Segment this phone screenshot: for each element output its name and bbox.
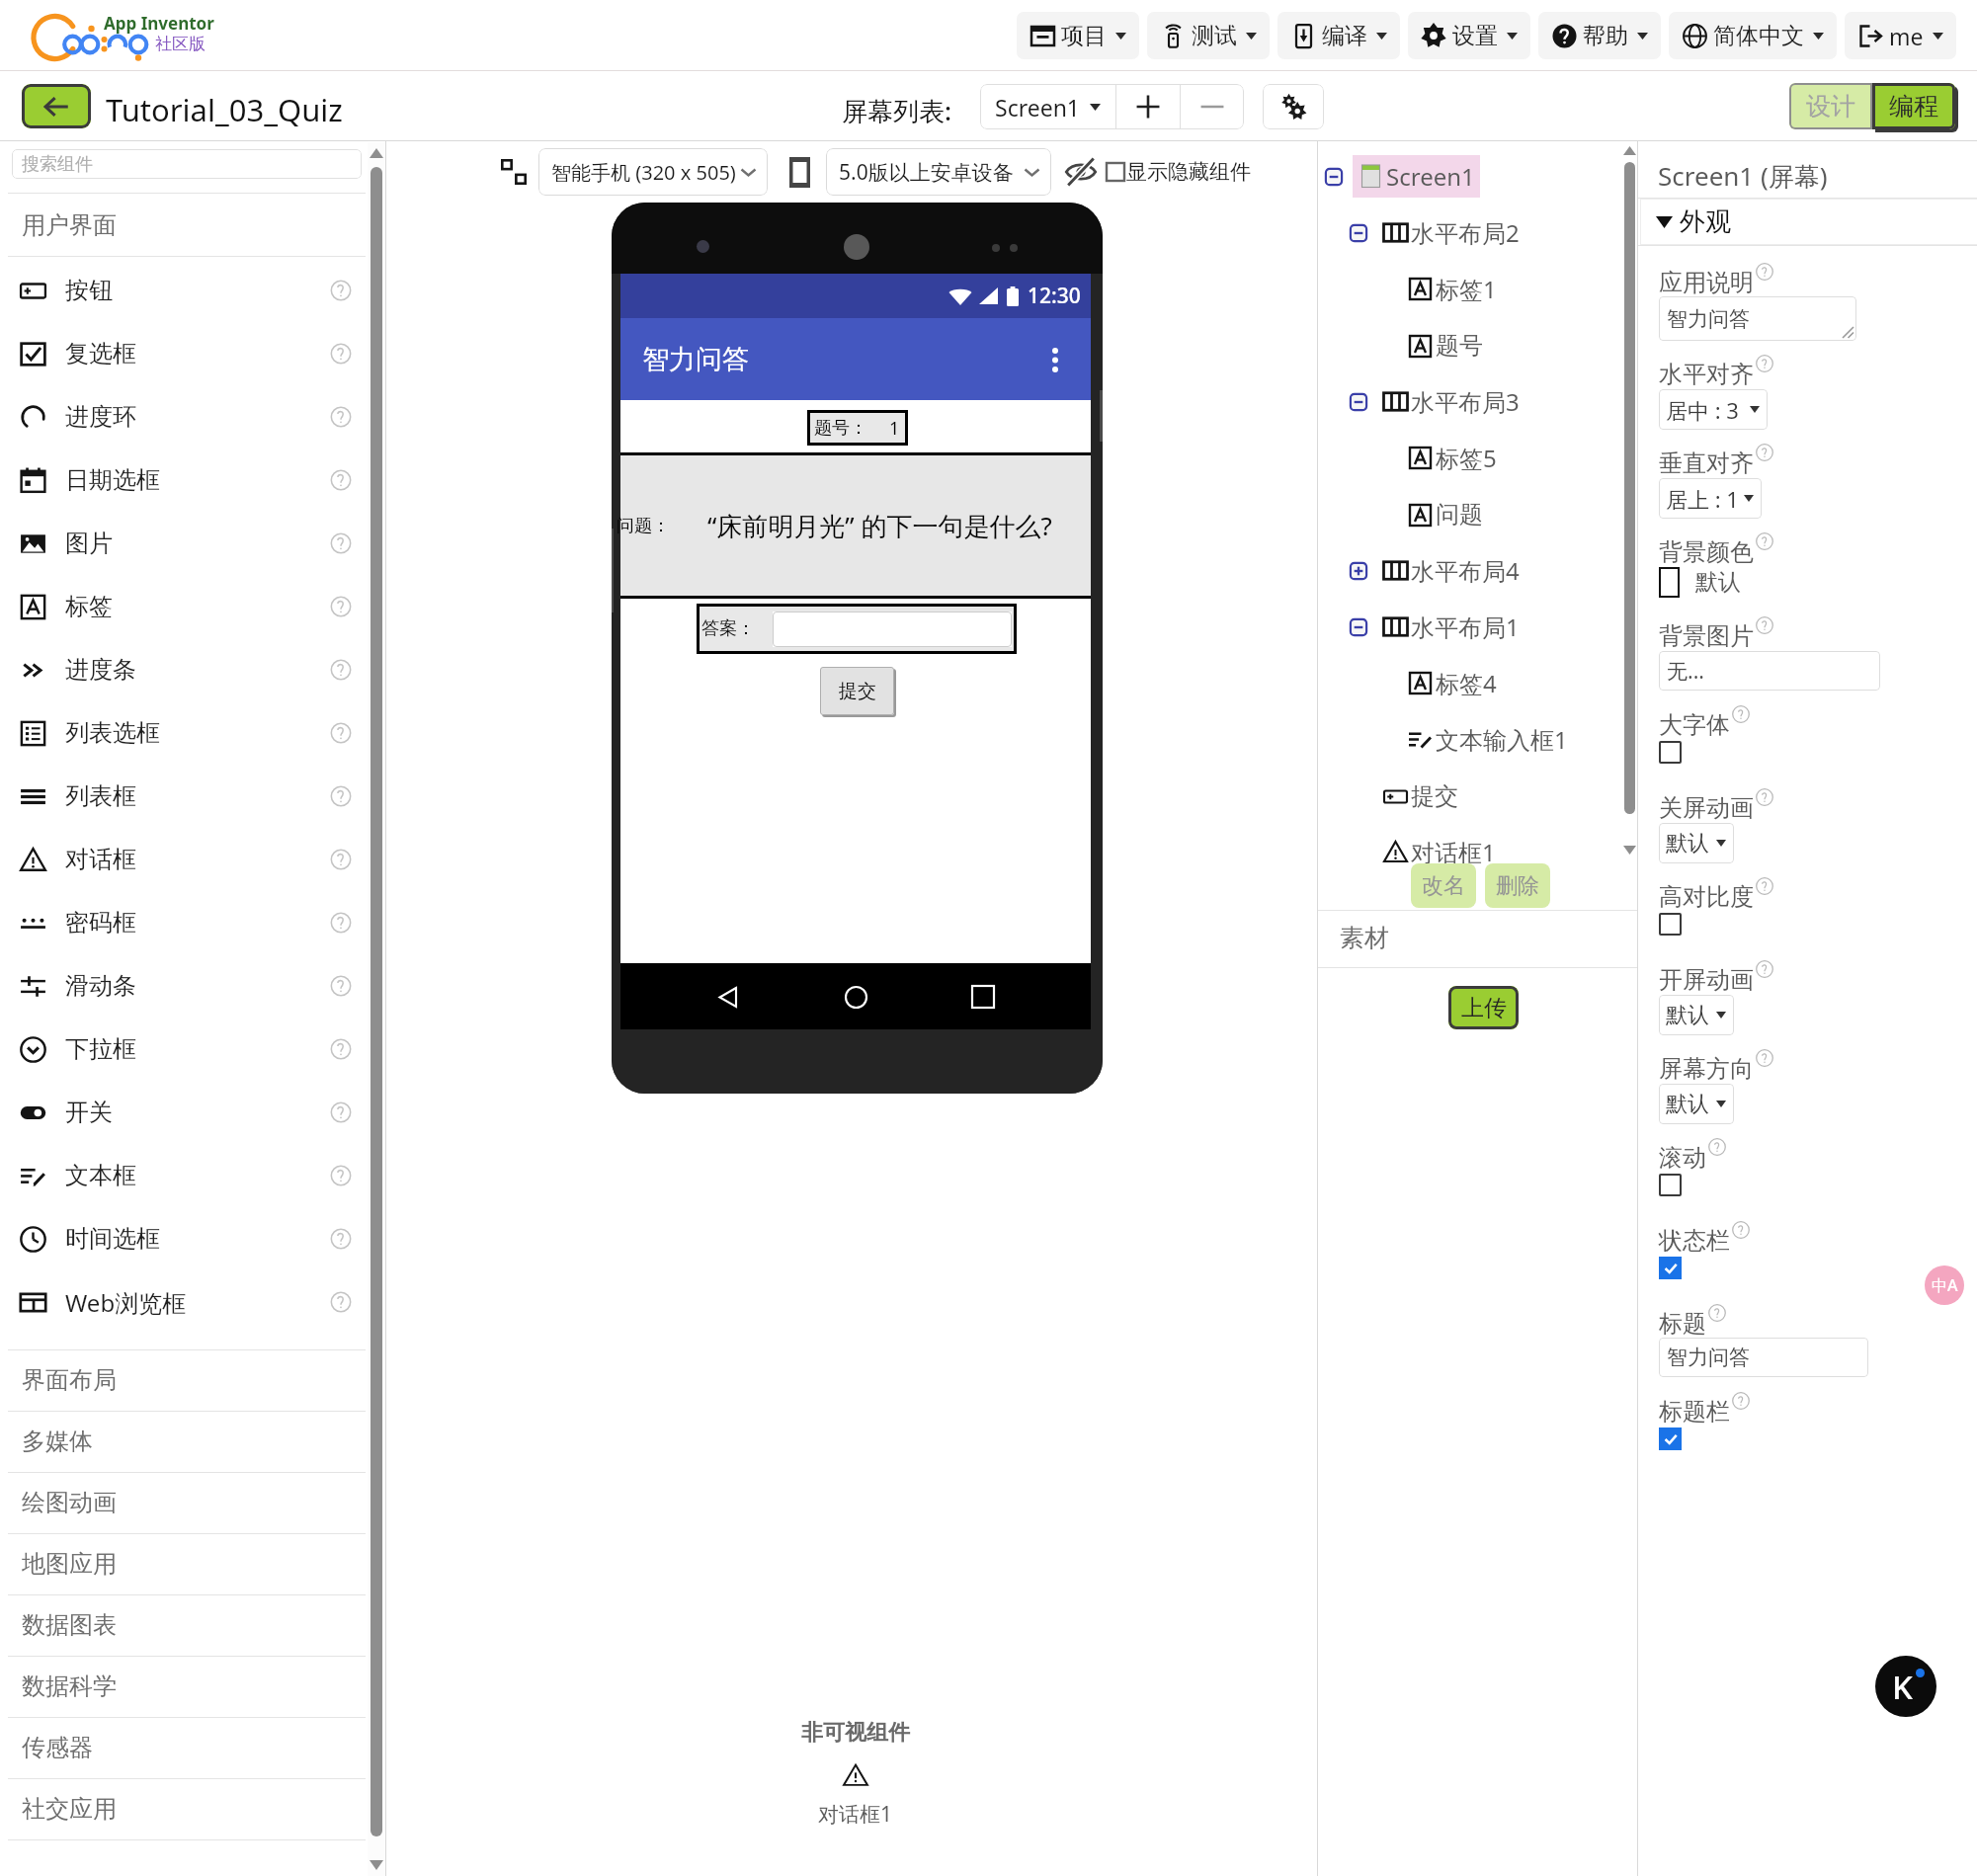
button[interactable]: 智力问答: [1659, 1338, 1868, 1377]
staticText: 数据图表: [22, 1610, 117, 1640]
button[interactable]: 绘图动画: [0, 1472, 385, 1533]
button[interactable]: 水平布局1: [1318, 599, 1637, 655]
staticText: 改名: [1422, 872, 1465, 900]
button[interactable]: 标签: [0, 575, 368, 638]
staticText: 列表选框: [65, 718, 160, 748]
button[interactable]: 5.0版以上安卓设备: [826, 148, 1051, 196]
button[interactable]: 水平布局4: [1318, 542, 1637, 599]
staticText: 下拉框: [65, 1034, 136, 1064]
button[interactable]: 密码框: [0, 891, 368, 954]
button[interactable]: [1659, 1257, 1682, 1279]
staticText: Web浏览框: [65, 1286, 187, 1319]
button[interactable]: 默认: [1659, 823, 1734, 863]
button[interactable]: 多媒体: [0, 1411, 385, 1472]
staticText: 智力问答: [1667, 306, 1750, 332]
button[interactable]: 数据科学: [0, 1656, 385, 1717]
button[interactable]: 外观: [1640, 199, 1977, 245]
button[interactable]: 日期选框: [0, 449, 368, 512]
button[interactable]: 上传: [1448, 986, 1519, 1029]
button[interactable]: 居中 : 3: [1659, 389, 1768, 430]
button[interactable]: 数据图表: [0, 1594, 385, 1656]
button[interactable]: 问题: [1318, 486, 1637, 542]
button[interactable]: 项目: [1017, 12, 1139, 59]
button[interactable]: Screen1: [1318, 148, 1637, 204]
button[interactable]: 翻译: [1925, 1265, 1964, 1305]
button[interactable]: 标签4: [1318, 655, 1637, 711]
button[interactable]: 标签1: [1318, 261, 1637, 317]
button[interactable]: 智力问答: [1659, 296, 1856, 341]
button[interactable]: Screen1: [980, 84, 1115, 129]
button[interactable]: [1659, 1427, 1682, 1450]
staticText: 标签5: [1436, 442, 1497, 474]
button[interactable]: 社交应用: [0, 1778, 385, 1839]
staticText: me: [1889, 21, 1924, 51]
staticText: 问题: [1436, 500, 1483, 530]
button[interactable]: 滑动条: [0, 954, 368, 1018]
button[interactable]: 复选框: [0, 322, 368, 385]
staticText: 测试: [1192, 22, 1237, 50]
button[interactable]: Kimi assistant: [1875, 1656, 1936, 1717]
staticText: 12:30: [1028, 282, 1081, 310]
button[interactable]: 编程: [1872, 83, 1955, 129]
button[interactable]: me: [1845, 12, 1956, 59]
button[interactable]: 主页: [835, 976, 876, 1018]
button[interactable]: 帮助: [1538, 12, 1661, 59]
button[interactable]: 进度条: [0, 638, 368, 701]
button[interactable]: 默认: [1659, 1084, 1734, 1124]
button[interactable]: 按钮: [0, 259, 368, 322]
button[interactable]: 水平布局3: [1318, 373, 1637, 430]
button[interactable]: Web浏览框: [0, 1270, 368, 1334]
button[interactable]: 地图应用: [0, 1533, 385, 1594]
button[interactable]: 图片: [0, 512, 368, 575]
button[interactable]: 文本输入框1: [1318, 711, 1637, 768]
button[interactable]: 删除: [1485, 863, 1550, 908]
button[interactable]: 添加屏幕: [1116, 84, 1180, 129]
button[interactable]: 下拉框: [0, 1018, 368, 1081]
staticText: 设计: [1806, 91, 1855, 122]
button[interactable]: 列表选框: [0, 701, 368, 765]
button[interactable]: 显示隐藏组件: [1107, 159, 1251, 185]
button[interactable]: 对话框: [0, 828, 368, 891]
button[interactable]: 设置: [1408, 12, 1530, 59]
button[interactable]: 水平布局2: [1318, 204, 1637, 261]
button[interactable]: 提交: [1318, 768, 1637, 824]
button[interactable]: 开关: [0, 1081, 368, 1144]
button[interactable]: 界面布局: [0, 1349, 385, 1411]
staticText: 列表框: [65, 781, 136, 811]
button[interactable]: 简体中文: [1669, 12, 1837, 59]
button[interactable]: 删除屏幕: [1181, 84, 1244, 129]
button[interactable]: 题号: [1318, 317, 1637, 373]
button[interactable]: 搜索组件: [12, 149, 362, 179]
staticText: 水平布局4: [1411, 554, 1520, 587]
button[interactable]: [1659, 913, 1682, 936]
button[interactable]: 时间选框: [0, 1207, 368, 1270]
button[interactable]: 返回: [707, 976, 749, 1018]
button[interactable]: 编译: [1277, 12, 1400, 59]
button[interactable]: 改名: [1411, 863, 1476, 908]
button[interactable]: 智能手机 (320 x 505): [538, 148, 768, 196]
button[interactable]: 无...: [1659, 651, 1880, 691]
button[interactable]: 提交: [820, 667, 894, 715]
button[interactable]: 最近任务: [962, 976, 1004, 1018]
button[interactable]: 文本框: [0, 1144, 368, 1207]
staticText: 中A: [1932, 1274, 1958, 1296]
staticText: 传感器: [22, 1733, 93, 1762]
staticText: 界面布局: [22, 1365, 117, 1395]
button[interactable]: 设计: [1789, 83, 1872, 129]
button[interactable]: 居上 : 1: [1659, 478, 1762, 519]
button[interactable]: [1659, 1174, 1682, 1196]
button[interactable]: 对话框1: [1318, 824, 1637, 880]
button[interactable]: 进度环: [0, 385, 368, 449]
button[interactable]: 默认: [1659, 995, 1734, 1035]
staticText: 智力问答: [1667, 1345, 1750, 1370]
button[interactable]: 项目属性: [1263, 84, 1324, 129]
button[interactable]: 标签5: [1318, 430, 1637, 486]
button[interactable]: 列表框: [0, 765, 368, 828]
staticText: Screen1: [1386, 160, 1475, 193]
button[interactable]: 传感器: [0, 1717, 385, 1778]
button[interactable]: [1659, 567, 1680, 598]
button[interactable]: 测试: [1147, 12, 1270, 59]
button[interactable]: [1659, 741, 1682, 764]
button[interactable]: 返回: [22, 84, 91, 128]
staticText: Tutorial_03_Quiz: [106, 89, 343, 130]
